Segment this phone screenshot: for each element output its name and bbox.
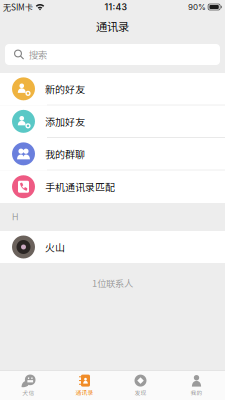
button[interactable]: 新的好友: [0, 73, 225, 105]
staticText: 发现: [134, 389, 146, 397]
button[interactable]: 犬信: [0, 371, 56, 400]
button[interactable]: 火山: [0, 231, 225, 263]
staticText: 通讯录: [75, 389, 93, 397]
staticText: 搜索: [29, 48, 47, 61]
staticText: 我的群聊: [45, 147, 85, 161]
button[interactable]: 发现: [112, 371, 168, 400]
staticText: H: [12, 212, 18, 222]
staticText: 火山: [45, 240, 65, 254]
button[interactable]: 添加好友: [0, 105, 225, 138]
staticText: 犬信: [22, 389, 34, 397]
staticText: 通讯录: [96, 18, 129, 34]
staticText: 我的: [190, 389, 202, 397]
button[interactable]: 我的群聊: [0, 138, 225, 170]
staticText: 11:43: [104, 2, 127, 12]
staticText: 添加好友: [45, 114, 85, 129]
button[interactable]: 手机通讯录匹配: [0, 170, 225, 203]
staticText: 1位联系人: [92, 276, 133, 290]
staticText: 无SIM卡: [3, 1, 33, 13]
button[interactable]: 我的: [168, 371, 224, 400]
staticText: 90%: [188, 2, 206, 12]
staticText: 新的好友: [45, 82, 85, 96]
button[interactable]: 通讯录: [56, 371, 112, 400]
staticText: 手机通讯录匹配: [45, 179, 115, 194]
